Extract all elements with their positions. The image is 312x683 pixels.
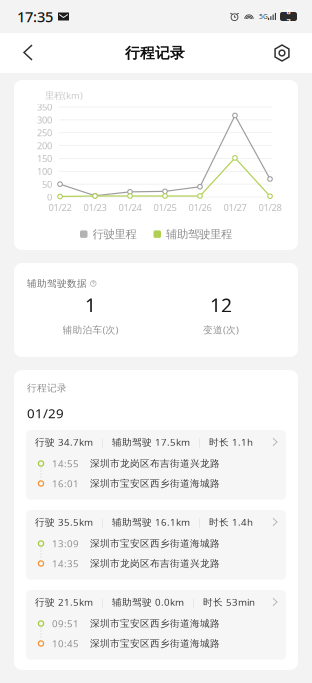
staticText: | [100, 436, 105, 448]
staticText: 1 [85, 292, 96, 318]
staticText: 350 [37, 101, 52, 113]
staticText: 13:09 [52, 537, 79, 550]
staticText: 深圳市宝安区西乡街道海城路 [90, 477, 220, 490]
staticText: 行程记录 [125, 44, 185, 62]
staticText: 辅助驾驶 17.5km [112, 435, 190, 449]
staticText: 辅助泊车(次) [62, 323, 118, 336]
staticText: 变道(次) [203, 323, 239, 336]
staticText: 16:01 [52, 477, 79, 490]
staticText: | [197, 516, 202, 528]
staticText: 01/28 [258, 201, 281, 214]
staticText: 200 [37, 139, 52, 152]
staticText: 01/25 [153, 201, 176, 214]
staticText: 17:35 [17, 6, 53, 26]
staticText: 深圳市龙岗区布吉街道兴龙路 [90, 457, 220, 470]
staticText: | [100, 516, 105, 528]
button[interactable]: 返回 [6, 33, 50, 73]
staticText: 时长 1.4h [209, 515, 253, 529]
staticText: 01/26 [188, 201, 211, 214]
staticText: 深圳市宝安区西乡街道海城路 [90, 637, 220, 650]
button[interactable]: 行驶 34.7km [26, 430, 286, 500]
staticText: 深圳市宝安区西乡街道海城路 [90, 617, 220, 630]
staticText: 辅助驾驶 16.1km [112, 515, 190, 529]
staticText: 行驶里程 [92, 227, 136, 241]
staticText: | [191, 596, 196, 608]
staticText: 50 [42, 178, 52, 190]
button[interactable]: 设置 [260, 33, 304, 73]
staticText: | [197, 436, 202, 448]
staticText: 0 [47, 191, 52, 203]
staticText: 01/29 [27, 404, 64, 422]
staticText: 行程记录 [27, 382, 67, 394]
staticText: 里程(km) [45, 89, 83, 102]
staticText: 100 [37, 165, 52, 178]
staticText: 行驶 35.5km [35, 515, 93, 529]
staticText: 300 [37, 113, 52, 126]
staticText: 辅助驾驶里程 [166, 227, 232, 241]
staticText: 14:55 [52, 457, 79, 470]
staticText: 09:51 [52, 617, 79, 630]
staticText: 150 [37, 152, 52, 165]
staticText: 10:45 [52, 637, 79, 650]
staticText: 01/23 [83, 201, 106, 214]
staticText: 01/22 [48, 201, 71, 214]
staticText: 12 [210, 292, 232, 318]
staticText: 250 [37, 126, 52, 139]
staticText: 时长 53min [203, 595, 255, 609]
staticText: 深圳市宝安区西乡街道海城路 [90, 537, 220, 550]
staticText: 01/24 [118, 201, 141, 214]
staticText: | [100, 596, 105, 608]
button[interactable]: 行驶 35.5km [26, 510, 286, 580]
staticText: 辅助驾驶 0.0km [112, 595, 184, 609]
staticText: 时长 1.1h [209, 435, 253, 449]
staticText: 深圳市龙岗区布吉街道兴龙路 [90, 557, 220, 570]
button[interactable]: 行驶 21.5km [26, 590, 286, 660]
staticText: 14:35 [52, 557, 79, 570]
staticText: 87 [286, 6, 290, 26]
staticText: 行驶 34.7km [35, 435, 93, 449]
staticText: 行驶 21.5km [35, 595, 93, 609]
staticText: 01/27 [223, 201, 246, 214]
staticText: 5G [259, 12, 268, 21]
staticText: 辅助驾驶数据 [27, 277, 87, 290]
